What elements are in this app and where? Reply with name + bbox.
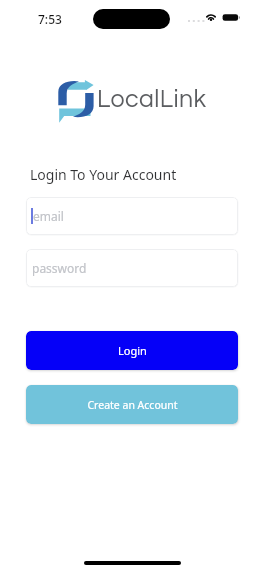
staticText: Create an Account bbox=[87, 398, 178, 412]
button[interactable]: Create an Account bbox=[26, 385, 238, 424]
staticText: Login bbox=[118, 343, 147, 358]
staticText: email bbox=[33, 208, 64, 224]
other: LocalLink logo bbox=[57, 79, 95, 123]
staticText: password bbox=[32, 260, 87, 276]
button[interactable]: password bbox=[26, 249, 238, 287]
button[interactable]: email bbox=[26, 197, 238, 235]
button[interactable]: Login bbox=[26, 331, 238, 370]
staticText: 7:53 bbox=[38, 11, 62, 27]
staticText: Login To Your Account bbox=[30, 165, 177, 184]
staticText: LocalLink bbox=[97, 86, 207, 112]
